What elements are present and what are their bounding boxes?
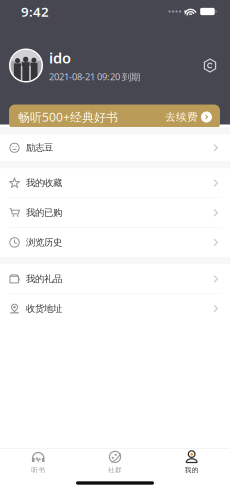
staticText: 我的收藏: [26, 177, 62, 189]
button[interactable]: 畅听500+经典好书: [0, 104, 230, 129]
staticText: 2021-08-21 09:20 到期: [49, 70, 140, 83]
staticText: 我的已购: [26, 207, 62, 218]
staticText: ido: [49, 48, 71, 68]
button[interactable]: 我的礼品: [0, 264, 230, 293]
staticText: 9:42: [21, 3, 49, 20]
staticText: 收货地址: [26, 303, 62, 314]
staticText: 我的: [185, 466, 199, 474]
button[interactable]: 我的收藏: [0, 168, 230, 197]
button[interactable]: 收货地址: [0, 294, 230, 323]
staticText: 畅听500+经典好书: [18, 109, 118, 125]
staticText: 我的礼品: [26, 273, 62, 285]
button[interactable]: 我的已购: [0, 198, 230, 227]
button[interactable]: 励志豆: [0, 134, 230, 161]
button[interactable]: 我的: [153, 449, 230, 473]
button[interactable]: 浏览历史: [0, 228, 230, 257]
staticText: 浏览历史: [26, 237, 62, 248]
staticText: 励志豆: [26, 142, 53, 153]
staticText: 去续费: [165, 110, 198, 123]
staticText: 社群: [108, 466, 122, 474]
button[interactable]: 社群: [77, 449, 153, 473]
button[interactable]: 听书: [0, 449, 77, 473]
button[interactable]: Settings: [197, 52, 223, 78]
staticText: 听书: [31, 466, 45, 474]
